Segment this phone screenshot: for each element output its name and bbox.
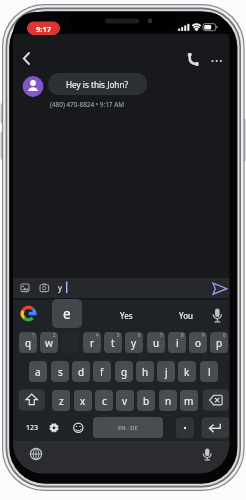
staticText: 2 xyxy=(53,332,56,338)
button[interactable]: u xyxy=(147,332,165,353)
staticText: (480) 470-8824 • 9:17 AM xyxy=(50,100,125,109)
button[interactable] xyxy=(209,52,227,70)
staticText: e xyxy=(63,305,71,323)
button[interactable] xyxy=(16,50,34,68)
button[interactable] xyxy=(68,417,88,438)
button[interactable]: s xyxy=(51,361,69,382)
staticText: 1 xyxy=(32,332,35,338)
staticText: 7 xyxy=(160,332,163,338)
staticText: 0 xyxy=(223,332,226,338)
button[interactable]: z xyxy=(52,390,70,411)
button[interactable]: g xyxy=(115,361,133,382)
button[interactable]: b xyxy=(137,390,155,411)
staticText: q xyxy=(25,336,32,350)
button[interactable] xyxy=(13,278,229,298)
staticText: d xyxy=(78,365,85,379)
button[interactable] xyxy=(203,390,229,411)
staticText: x xyxy=(80,394,86,408)
button[interactable]: j xyxy=(157,361,175,382)
button[interactable] xyxy=(208,280,230,298)
button[interactable]: You xyxy=(163,306,208,324)
staticText: n xyxy=(165,394,172,408)
staticText: 9:17 xyxy=(36,24,51,34)
button[interactable]: o xyxy=(189,332,207,353)
button[interactable]: p xyxy=(210,332,228,353)
button[interactable]: f xyxy=(93,361,111,382)
staticText: v xyxy=(122,394,128,408)
button[interactable] xyxy=(176,417,194,438)
staticText: m xyxy=(184,394,194,408)
button[interactable]: Hey is this John? xyxy=(48,73,147,95)
button[interactable]: i xyxy=(168,332,186,353)
staticText: j xyxy=(165,365,168,379)
staticText: 6 xyxy=(138,332,141,338)
staticText: o xyxy=(195,336,202,350)
staticText: 123 xyxy=(26,423,39,433)
staticText: p xyxy=(216,336,223,350)
button[interactable]: l xyxy=(200,361,218,382)
staticText: s xyxy=(58,365,63,379)
staticText: b xyxy=(143,394,150,408)
button[interactable]: d xyxy=(72,361,90,382)
button[interactable] xyxy=(202,417,230,438)
button[interactable]: t xyxy=(104,332,122,353)
button[interactable]: a xyxy=(29,361,47,382)
staticText: 5 xyxy=(117,332,120,338)
staticText: 8 xyxy=(181,332,184,338)
button[interactable] xyxy=(184,52,202,70)
button[interactable]: w xyxy=(40,332,58,353)
button[interactable]: y xyxy=(125,332,143,353)
button[interactable] xyxy=(19,390,45,411)
staticText: r xyxy=(90,336,95,350)
staticText: z xyxy=(59,394,64,408)
staticText: t xyxy=(111,336,115,350)
button[interactable]: c xyxy=(95,390,113,411)
button[interactable]: v xyxy=(116,390,134,411)
button[interactable]: r xyxy=(83,332,101,353)
staticText: EN · DE xyxy=(118,424,138,432)
staticText: Hey is this John? xyxy=(66,79,129,90)
button[interactable] xyxy=(93,417,163,438)
button[interactable]: m xyxy=(180,390,198,411)
staticText: i xyxy=(176,336,179,350)
staticText: Yes xyxy=(120,310,133,321)
button[interactable]: q xyxy=(19,332,37,353)
staticText: y xyxy=(58,282,63,293)
staticText: a xyxy=(35,365,41,379)
staticText: w xyxy=(45,336,53,350)
button[interactable]: x xyxy=(74,390,92,411)
staticText: 9 xyxy=(202,332,205,338)
staticText: g xyxy=(121,365,128,379)
staticText: f xyxy=(100,365,104,379)
button[interactable]: 123 xyxy=(19,417,45,438)
staticText: u xyxy=(153,336,160,350)
staticText: y xyxy=(131,336,137,350)
staticText: You xyxy=(179,310,193,321)
staticText: c xyxy=(102,394,107,408)
staticText: k xyxy=(184,365,190,379)
button[interactable] xyxy=(44,417,64,438)
staticText: 4 xyxy=(96,332,99,338)
button[interactable]: k xyxy=(178,361,196,382)
staticText: l xyxy=(208,365,211,379)
button[interactable]: Yes xyxy=(104,306,149,324)
staticText: h xyxy=(142,365,149,379)
button[interactable]: n xyxy=(159,390,177,411)
button[interactable]: h xyxy=(136,361,154,382)
